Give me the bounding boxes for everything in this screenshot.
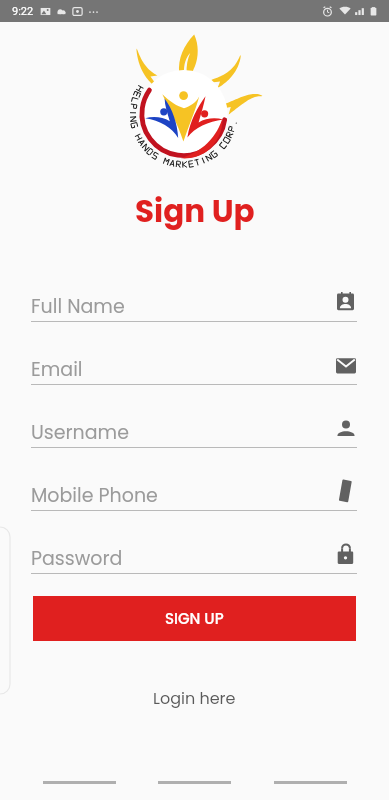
staticText: SIGN UP [165, 608, 224, 629]
staticText: Email [31, 356, 83, 383]
staticText: Full Name [31, 293, 125, 320]
button[interactable]: Login here [143, 683, 246, 713]
staticText: 9:22 [12, 5, 34, 18]
button[interactable]: Username [0, 410, 389, 473]
staticText: Username [31, 419, 129, 446]
staticText: Password [31, 545, 123, 572]
staticText: Login here [153, 687, 236, 709]
button[interactable]: Mobile Phone [0, 473, 389, 536]
button[interactable]: Full Name [0, 284, 389, 347]
button[interactable]: Email [0, 347, 389, 410]
staticText: Mobile Phone [31, 482, 158, 509]
button[interactable]: SIGN UP [33, 596, 356, 641]
button[interactable]: Password [0, 536, 389, 599]
staticText: Sign Up [135, 189, 255, 232]
